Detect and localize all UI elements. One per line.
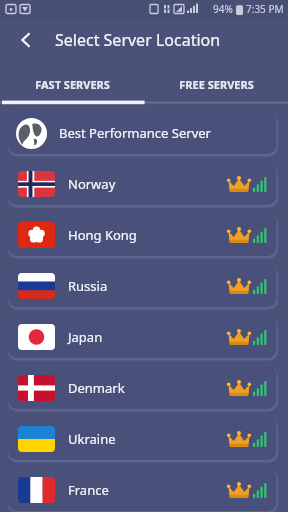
button[interactable]: Back: [8, 22, 44, 58]
button[interactable]: FREE SERVERS: [144, 62, 288, 106]
staticText: Denmark: [68, 379, 125, 397]
button[interactable]: Japan: [8, 315, 278, 359]
button[interactable]: Norway: [8, 162, 278, 206]
button[interactable]: Ukraine: [8, 417, 278, 461]
staticText: FAST SERVERS: [35, 77, 110, 92]
button[interactable]: France: [8, 468, 278, 512]
button[interactable]: Hong Kong: [8, 213, 278, 257]
button[interactable]: Denmark: [8, 366, 278, 410]
staticText: Ukraine: [68, 430, 116, 448]
button[interactable]: Russia: [8, 264, 278, 308]
staticText: FREE SERVERS: [179, 77, 254, 92]
staticText: Hong Kong: [68, 226, 137, 244]
staticText: 7:35 PM: [246, 2, 284, 16]
staticText: Russia: [68, 277, 108, 295]
staticText: Select Server Location: [55, 29, 221, 51]
staticText: Norway: [68, 175, 116, 193]
staticText: 94%: [213, 2, 233, 16]
staticText: Best Performance Server: [59, 124, 211, 142]
button[interactable]: FAST SERVERS: [0, 62, 144, 106]
staticText: France: [68, 481, 109, 499]
button[interactable]: Best Performance Server: [8, 111, 278, 155]
staticText: Japan: [68, 328, 103, 346]
